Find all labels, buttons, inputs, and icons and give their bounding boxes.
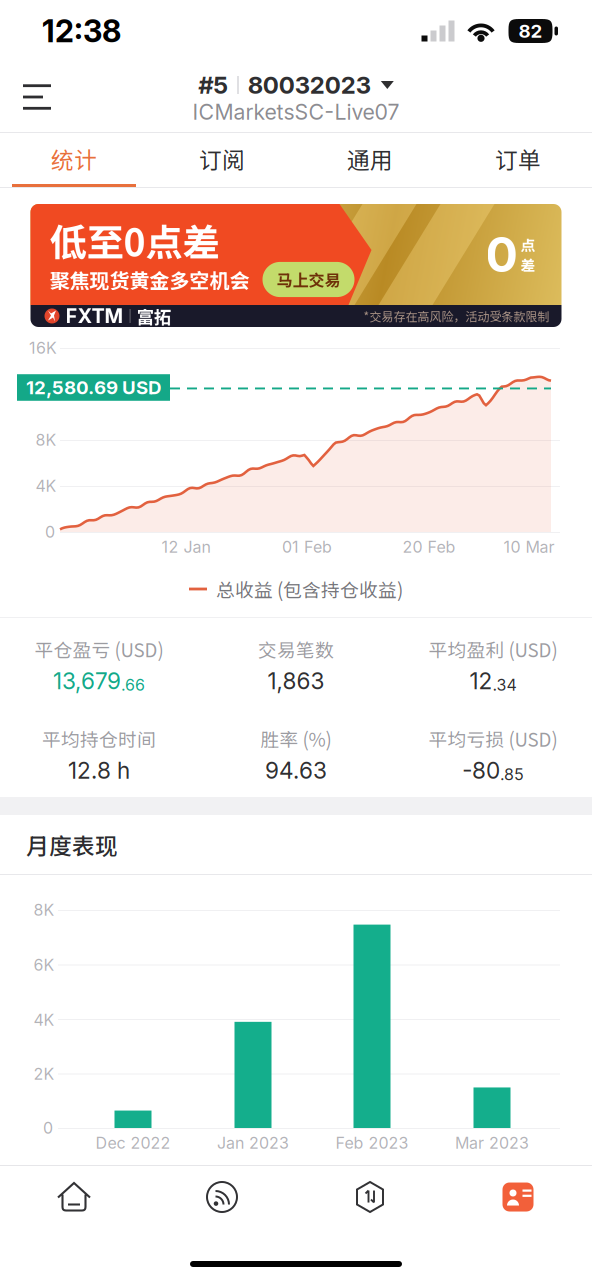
staticText: 80032023 bbox=[248, 70, 371, 99]
button[interactable]: Signals bbox=[148, 1166, 296, 1228]
staticText: 胜率 (%) bbox=[260, 725, 331, 752]
staticText: Dec 2022 bbox=[95, 1133, 170, 1153]
button[interactable]: Profile bbox=[444, 1166, 592, 1228]
staticText: 16K bbox=[29, 338, 57, 358]
staticText: 8K bbox=[33, 900, 54, 920]
staticText: 统计 bbox=[51, 142, 97, 175]
staticText: -80 bbox=[462, 757, 500, 784]
staticText: 13,679 bbox=[53, 667, 121, 695]
staticText: .85 bbox=[500, 765, 524, 784]
staticText: *交易存在高风险，活动受条款限制 bbox=[363, 307, 549, 325]
staticText: 12:38 bbox=[42, 12, 121, 49]
staticText: 94.63 bbox=[265, 757, 327, 784]
staticText: 低至0点差 bbox=[49, 213, 219, 267]
staticText: 4K bbox=[35, 476, 56, 496]
staticText: 8K bbox=[35, 430, 56, 450]
staticText: 4K bbox=[33, 1010, 54, 1030]
button[interactable]: Trade bbox=[296, 1166, 444, 1228]
staticText: .34 bbox=[492, 675, 516, 695]
staticText: Mar 2023 bbox=[455, 1133, 529, 1153]
staticText: 平均亏损 (USD) bbox=[428, 725, 557, 752]
staticText: 12 Jan bbox=[161, 537, 210, 557]
button[interactable]: 订阅 bbox=[148, 133, 296, 184]
staticText: 订阅 bbox=[199, 142, 245, 175]
staticText: 20 Feb bbox=[402, 537, 455, 557]
staticText: 0 bbox=[43, 1118, 53, 1138]
button[interactable]: 低至0点差 bbox=[0, 188, 592, 335]
staticText: 12.8 h bbox=[68, 757, 130, 784]
staticText: .66 bbox=[121, 675, 145, 695]
staticText: 01 Feb bbox=[282, 537, 332, 557]
staticText: 平仓盈亏 (USD) bbox=[34, 635, 163, 662]
staticText: 订单 bbox=[495, 142, 541, 175]
button[interactable]: 订单 bbox=[444, 133, 592, 184]
staticText: 12,580.69 USD bbox=[26, 376, 161, 399]
staticText: 平均持仓时间 bbox=[42, 725, 156, 752]
staticText: 10 Mar bbox=[503, 537, 554, 557]
staticText: 交易笔数 bbox=[258, 635, 334, 662]
staticText: Feb 2023 bbox=[335, 1133, 408, 1153]
staticText: 0 bbox=[485, 225, 517, 284]
staticText: 2K bbox=[33, 1064, 54, 1084]
button[interactable]: 统计 bbox=[0, 133, 148, 184]
staticText: 聚焦现货黄金多空机会 bbox=[49, 265, 249, 294]
staticText: 月度表现 bbox=[26, 828, 118, 861]
staticText: 0 bbox=[45, 522, 55, 542]
staticText: 1,863 bbox=[267, 667, 324, 695]
staticText: 马上交易 bbox=[276, 268, 340, 291]
staticText: Jan 2023 bbox=[217, 1133, 289, 1153]
staticText: 12 bbox=[469, 667, 492, 695]
staticText: 82 bbox=[518, 20, 542, 42]
button[interactable]: 通用 bbox=[296, 133, 444, 184]
button[interactable]: Home bbox=[0, 1166, 148, 1228]
staticText: 6K bbox=[33, 955, 54, 975]
staticText: 通用 bbox=[347, 142, 393, 175]
staticText: #5 bbox=[198, 70, 228, 99]
staticText: 平均盈利 (USD) bbox=[428, 635, 557, 662]
staticText: FXTM bbox=[65, 304, 123, 328]
staticText: 总收益 (包含持仓收益) bbox=[216, 575, 403, 602]
staticText: 点 bbox=[520, 234, 535, 255]
staticText: 富拓 bbox=[137, 303, 171, 329]
staticText: ICMarketsSC-Live07 bbox=[192, 99, 399, 125]
button[interactable]: Menu bbox=[9, 69, 65, 125]
staticText: 差 bbox=[520, 254, 535, 275]
